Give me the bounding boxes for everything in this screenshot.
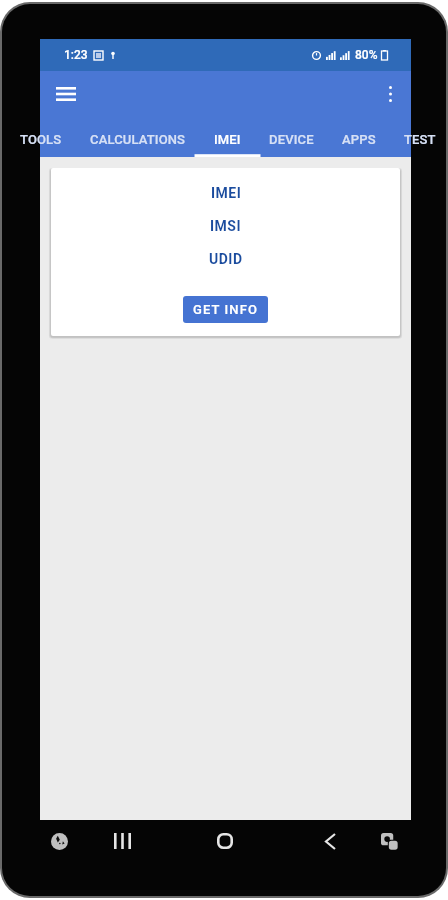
staticText: 80% xyxy=(355,48,378,62)
button[interactable]: More options xyxy=(370,74,410,114)
staticText: APPS xyxy=(342,132,376,147)
button[interactable]: Home xyxy=(209,825,241,857)
button[interactable]: TEST xyxy=(390,116,448,157)
staticText: TOOLS xyxy=(20,132,62,147)
staticText: 1:23 xyxy=(64,48,88,62)
staticText: UDID xyxy=(209,251,243,267)
button[interactable]: Back xyxy=(314,825,346,857)
button[interactable]: Assistant xyxy=(43,825,75,857)
staticText: IMSI xyxy=(210,218,242,234)
button[interactable]: Multi window xyxy=(373,825,405,857)
button[interactable]: IMSI xyxy=(166,209,286,242)
button[interactable]: Open navigation menu xyxy=(46,74,86,114)
button[interactable]: CALCULATIONS xyxy=(76,116,200,157)
button[interactable]: IMEI xyxy=(200,116,255,157)
staticText: IMEI xyxy=(211,185,242,201)
staticText: TEST xyxy=(404,132,436,147)
staticText: CALCULATIONS xyxy=(90,132,186,147)
button[interactable]: IMEI xyxy=(166,176,286,209)
button[interactable]: GET INFO xyxy=(183,296,268,323)
button[interactable]: APPS xyxy=(328,116,390,157)
staticText: GET INFO xyxy=(193,302,258,317)
staticText: IMEI xyxy=(214,132,241,147)
button[interactable]: Recent apps xyxy=(106,825,138,857)
staticText: DEVICE xyxy=(269,132,314,147)
button[interactable]: TOOLS xyxy=(6,116,76,157)
button[interactable]: UDID xyxy=(166,242,286,275)
button[interactable]: DEVICE xyxy=(255,116,328,157)
